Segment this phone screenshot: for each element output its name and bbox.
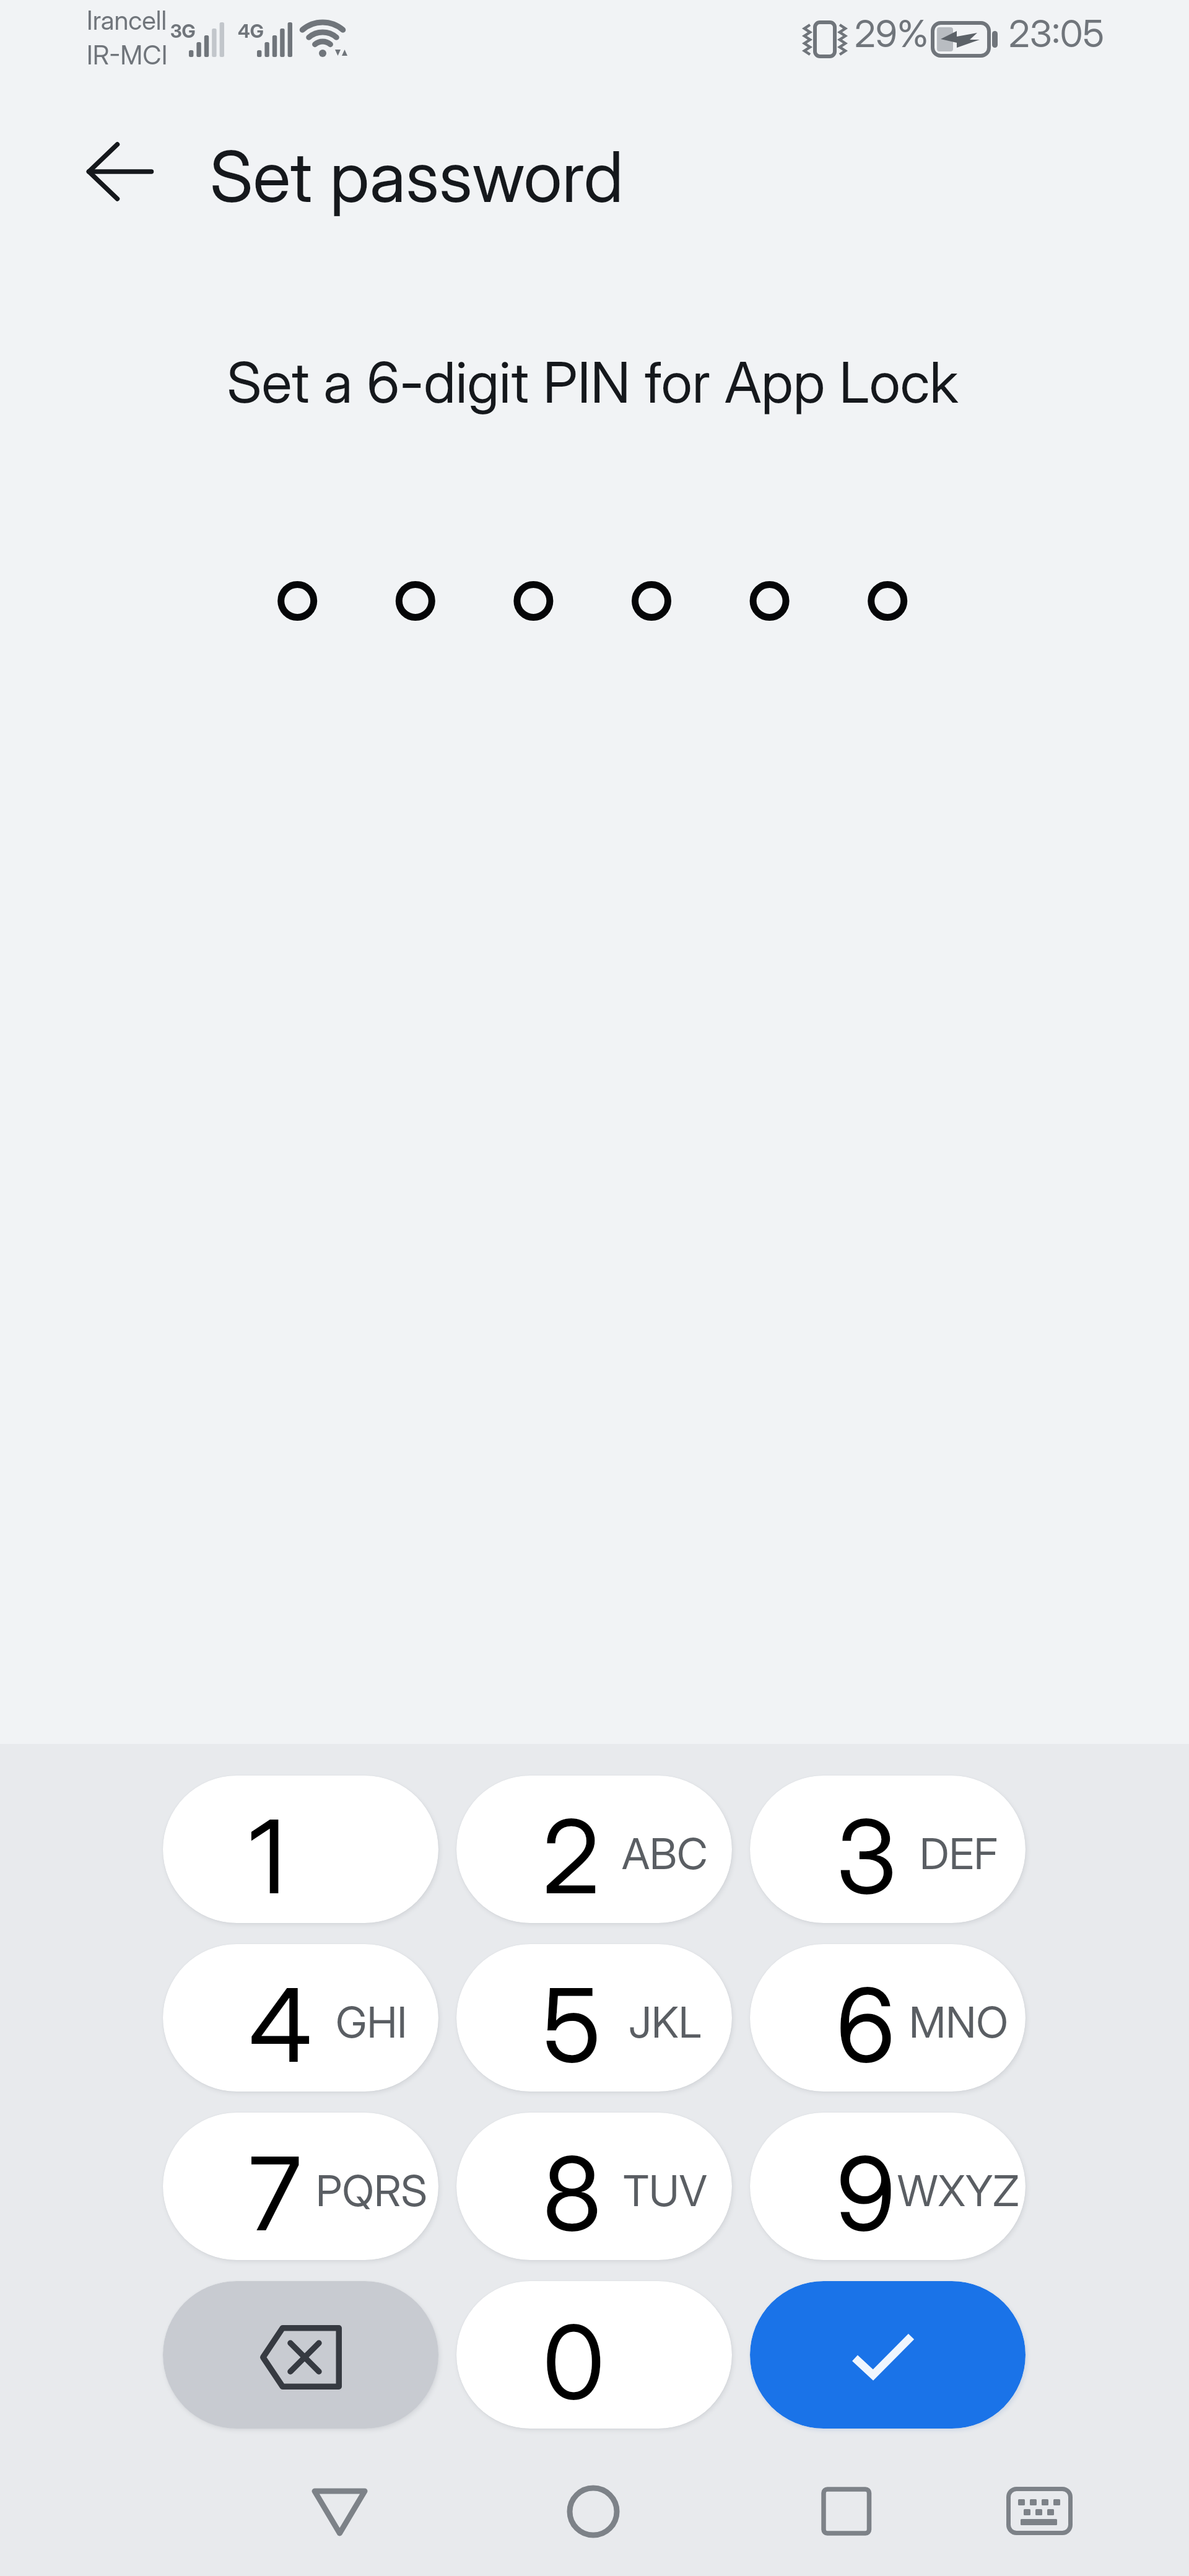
button[interactable]: 3 [750, 1776, 1026, 1923]
staticText: 0 [542, 2300, 605, 2423]
button[interactable]: 6 [750, 1944, 1026, 2092]
staticText: PQRS [316, 2165, 427, 2216]
button[interactable]: Back [50, 134, 126, 211]
button[interactable]: 7 [163, 2113, 438, 2260]
staticText: 2 [542, 1795, 600, 1917]
staticText: DEF [920, 1828, 998, 1879]
staticText: Set password [210, 134, 624, 219]
staticText: 29% [855, 11, 929, 56]
staticText: 4 [249, 1963, 312, 2086]
button[interactable]: 1 [163, 1776, 438, 1923]
button[interactable]: Delete [163, 2281, 438, 2429]
staticText: 9 [836, 2132, 895, 2254]
staticText: TUV [623, 2165, 707, 2216]
staticText: GHI [336, 1996, 407, 2048]
staticText: WXYZ [897, 2165, 1019, 2216]
staticText: ABC [622, 1828, 708, 1879]
staticText: 6 [836, 1963, 895, 2086]
staticText: 1 [249, 1795, 286, 1917]
button[interactable]: Confirm [750, 2281, 1026, 2429]
button[interactable]: 4 [163, 1944, 438, 2092]
button[interactable]: 0 [456, 2281, 732, 2429]
button[interactable]: 5 [456, 1944, 732, 2092]
staticText: IR-MCI [87, 39, 168, 71]
staticText: 8 [542, 2132, 602, 2254]
staticText: 5 [542, 1963, 601, 2086]
button[interactable]: 8 [456, 2113, 732, 2260]
staticText: Set a 6-digit PIN for App Lock [0, 348, 1187, 416]
staticText: 4G [238, 20, 264, 42]
button[interactable]: 9 [750, 2113, 1026, 2260]
staticText: JKL [629, 1996, 702, 2048]
staticText: 23:05 [1009, 11, 1105, 56]
staticText: MNO [909, 1996, 1008, 2048]
staticText: 3 [836, 1795, 897, 1917]
staticText: 7 [249, 2132, 302, 2254]
button[interactable]: 2 [456, 1776, 732, 1923]
staticText: 3G [170, 20, 196, 42]
staticText: Irancell [87, 4, 167, 36]
